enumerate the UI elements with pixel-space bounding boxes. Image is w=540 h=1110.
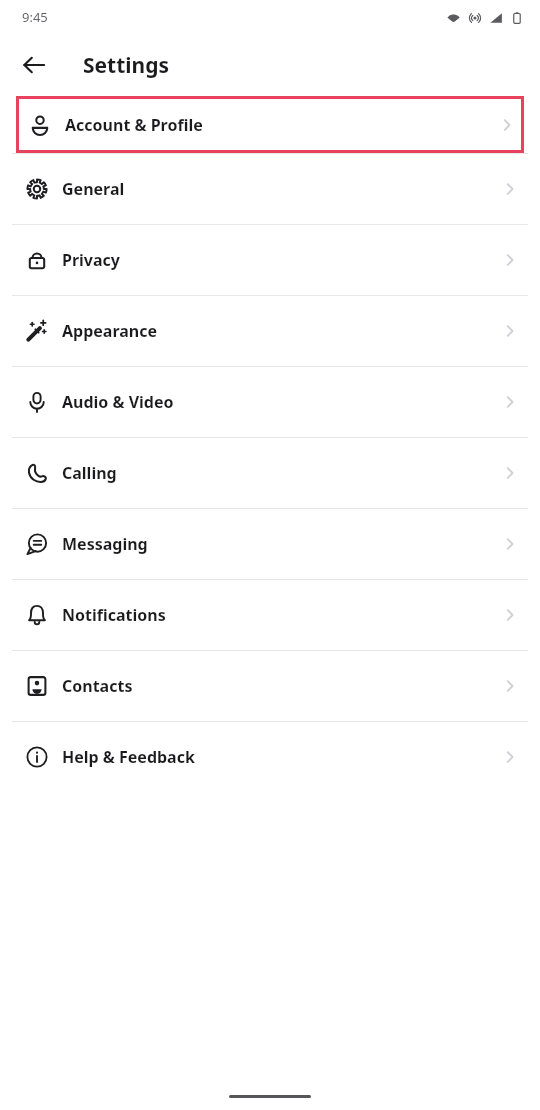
- staticText: Contacts: [62, 675, 133, 697]
- staticText: Help & Feedback: [62, 746, 195, 768]
- staticText: Messaging: [62, 533, 148, 555]
- staticText: Settings: [83, 51, 170, 80]
- button[interactable]: Notifications: [0, 580, 540, 650]
- button[interactable]: Audio & Video: [0, 367, 540, 437]
- button[interactable]: Help & Feedback: [0, 722, 540, 792]
- staticText: Calling: [62, 462, 117, 484]
- button[interactable]: Contacts: [0, 651, 540, 721]
- staticText: 9:45: [22, 8, 48, 26]
- button[interactable]: Privacy: [0, 225, 540, 295]
- button[interactable]: Messaging: [0, 509, 540, 579]
- button[interactable]: General: [0, 154, 540, 224]
- staticText: Notifications: [62, 604, 166, 626]
- staticText: Account & Profile: [65, 114, 203, 136]
- button[interactable]: Calling: [0, 438, 540, 508]
- staticText: Privacy: [62, 249, 120, 271]
- staticText: General: [62, 178, 125, 200]
- button[interactable]: Appearance: [0, 296, 540, 366]
- button[interactable]: Back: [10, 41, 58, 89]
- staticText: Appearance: [62, 320, 158, 342]
- button[interactable]: Account & Profile: [16, 96, 524, 153]
- staticText: Audio & Video: [62, 391, 174, 413]
